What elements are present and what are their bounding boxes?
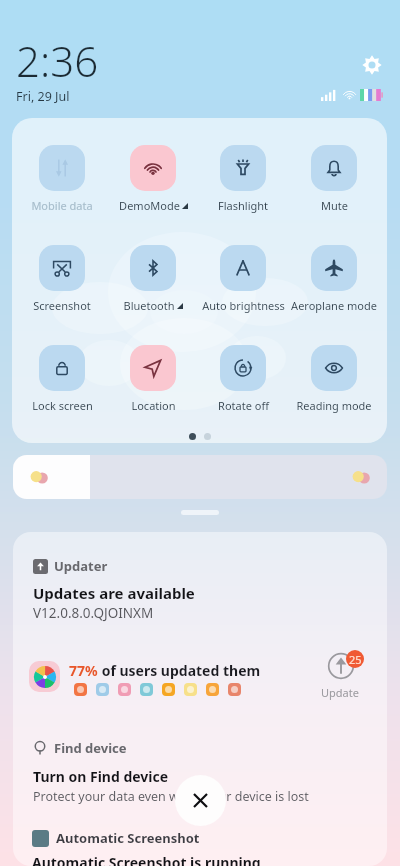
- staticText: Protect your data even when your device …: [33, 788, 309, 805]
- staticText: Screenshot: [33, 298, 91, 313]
- staticText: DemoMode: [119, 198, 180, 213]
- button[interactable]: Auto brightness: [200, 245, 286, 313]
- button[interactable]: Mobile data: [19, 145, 105, 213]
- button[interactable]: Rotate off: [200, 345, 286, 413]
- button[interactable]: Bluetooth: [110, 245, 196, 313]
- staticText: Location: [131, 398, 176, 413]
- staticText: Turn on Find device: [33, 767, 169, 786]
- button[interactable]: Update: [321, 652, 373, 704]
- staticText: Aeroplane mode: [291, 298, 377, 313]
- button[interactable]: Lock screen: [19, 345, 105, 413]
- staticText: Updates are available: [33, 583, 195, 603]
- button[interactable]: Flashlight: [200, 145, 286, 213]
- staticText: of users updated them: [98, 661, 261, 680]
- staticText: Mute: [321, 198, 348, 213]
- button[interactable]: Mute: [291, 145, 377, 213]
- button[interactable]: DemoMode: [110, 145, 196, 213]
- staticText: Updater: [54, 557, 108, 575]
- staticText: Flashlight: [218, 198, 268, 213]
- staticText: Automatic Screenshot: [56, 829, 200, 847]
- staticText: Mobile data: [31, 198, 93, 213]
- button[interactable]: Automatic Screenshot: [13, 826, 387, 866]
- button[interactable]: Brightness: [13, 455, 387, 499]
- staticText: Update: [321, 685, 359, 700]
- staticText: Rotate off: [218, 398, 269, 413]
- staticText: Reading mode: [296, 398, 372, 413]
- button[interactable]: Reading mode: [291, 345, 377, 413]
- staticText: Lock screen: [32, 398, 93, 413]
- staticText: V12.0.8.0.QJOINXM: [33, 604, 154, 622]
- staticText: Find device: [54, 739, 127, 757]
- button[interactable]: Screenshot: [19, 245, 105, 313]
- button[interactable]: Find device: [13, 723, 387, 823]
- button[interactable]: Close: [175, 775, 226, 826]
- staticText: 2:36: [16, 32, 99, 89]
- button[interactable]: Updater: [13, 532, 387, 712]
- button[interactable]: Location: [110, 345, 196, 413]
- staticText: 25: [349, 652, 362, 667]
- staticText: Automatic Screenshot is running: [32, 853, 261, 866]
- staticText: Fri, 29 Jul: [16, 88, 70, 105]
- staticText: Bluetooth: [123, 298, 175, 313]
- staticText: Auto brightness: [202, 298, 285, 313]
- button[interactable]: Settings: [357, 50, 386, 79]
- button[interactable]: Aeroplane mode: [291, 245, 377, 313]
- staticText: 77%: [69, 661, 98, 680]
